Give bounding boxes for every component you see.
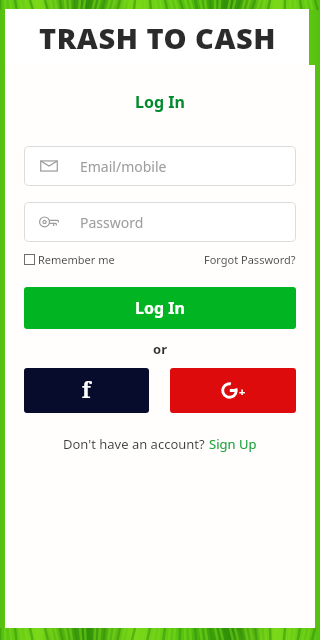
button[interactable]: Log In — [24, 287, 296, 329]
button[interactable]: Sign Up — [209, 435, 257, 453]
button[interactable]: Sign in with Facebook — [24, 368, 149, 413]
staticText: Log In — [135, 297, 185, 319]
button[interactable]: Forgot Password? — [204, 250, 296, 269]
staticText: f — [82, 376, 91, 405]
button[interactable]: Sign in with Google Plus — [170, 368, 296, 413]
staticText: Forgot Password? — [204, 252, 296, 267]
staticText: Don't have an account? — [63, 435, 209, 453]
staticText: Email/mobile — [80, 157, 167, 176]
staticText: TRASH TO CASH — [39, 18, 276, 57]
button[interactable]: Remember me — [24, 250, 115, 269]
button[interactable]: Email — [24, 146, 296, 186]
button[interactable]: Password — [24, 202, 296, 242]
staticText: Sign Up — [209, 435, 257, 453]
staticText: or — [5, 340, 315, 358]
staticText: + — [239, 384, 246, 399]
staticText: Log In — [5, 91, 315, 113]
staticText: Password — [80, 213, 144, 232]
staticText: Remember me — [38, 252, 115, 267]
